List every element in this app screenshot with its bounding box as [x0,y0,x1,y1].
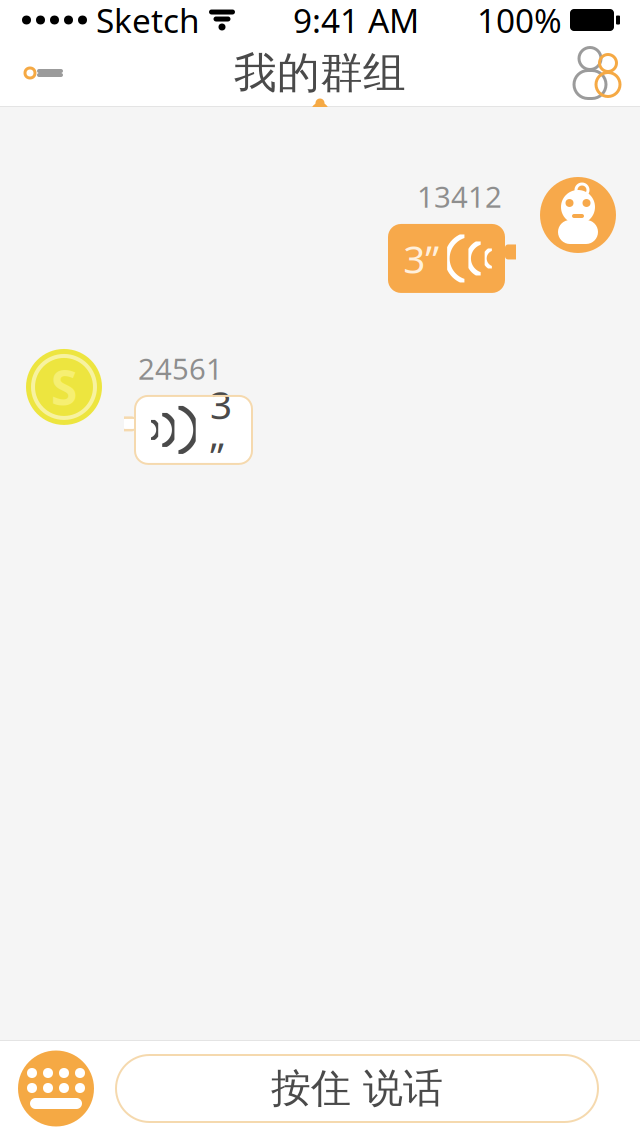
button[interactable]: 按住 说话 [116,1055,598,1122]
staticText: Sketch [96,0,200,42]
staticText: 我的群组 [234,47,406,99]
button[interactable]: Play voice message, 3 seconds [388,224,516,293]
staticText: 9:41 AM [293,0,419,42]
staticText: S [51,355,77,419]
staticText: 13412 [417,177,502,216]
button[interactable]: Play voice message, 3 seconds [124,396,252,464]
staticText: 3” [403,233,439,284]
button[interactable]: Keyboard [18,1050,94,1126]
button[interactable]: Back [0,40,86,106]
staticText: 按住 说话 [271,1064,443,1113]
staticText: 24561 [138,349,223,388]
staticText: 100% [477,0,562,42]
button[interactable]: Members [554,40,640,106]
staticText: 3” [210,379,232,481]
